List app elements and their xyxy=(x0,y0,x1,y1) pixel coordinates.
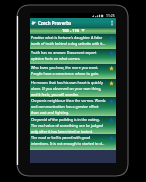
button[interactable]: Who loves you how, the more you want. Pe… xyxy=(30,64,116,79)
button[interactable]: 100 - 110 xyxy=(30,27,116,34)
button[interactable]: He means that has his own heart is quick… xyxy=(30,79,116,97)
button[interactable]: Favourite xyxy=(106,35,116,42)
staticText: Who loves you how, the more you want. Pe… xyxy=(31,65,106,76)
button[interactable]: Favourite xyxy=(106,80,116,87)
button[interactable]: More options xyxy=(109,18,115,27)
button[interactable]: Favourite xyxy=(106,50,116,57)
staticText: Truth has no answer. Document expert opi… xyxy=(31,50,106,61)
button[interactable]: The road or bell is paved with good inte… xyxy=(30,134,116,150)
staticText: 11:25 xyxy=(106,13,115,18)
button[interactable]: Czech Proverbs xyxy=(30,18,116,27)
button[interactable]: Favourite xyxy=(106,98,116,105)
staticText: 100 - 110 xyxy=(62,28,80,33)
button[interactable]: Truth has no answer. Document expert opi… xyxy=(30,49,116,64)
button[interactable]: Favourite xyxy=(106,117,116,124)
button[interactable]: Practise what is fortune's daughter. A f… xyxy=(30,34,116,49)
button[interactable]: Favourite xyxy=(106,135,116,142)
button[interactable]: Favourite xyxy=(106,65,116,72)
button[interactable]: Chrysmid of the pudding is in the eating… xyxy=(30,116,116,134)
staticText: Chrysmid of the pudding is in the eating… xyxy=(31,117,106,134)
button[interactable]: Chrysmic neighbour than the sorrow. Word… xyxy=(30,97,116,116)
staticText: Practise what is fortune's daughter. A f… xyxy=(31,35,106,46)
staticText: Chrysmic neighbour than the sorrow. Word… xyxy=(31,98,106,115)
staticText: The road or bell is paved with good inte… xyxy=(31,135,106,146)
staticText: Czech Proverbs xyxy=(38,20,72,26)
staticText: He means that has his own heart is quick… xyxy=(31,80,106,97)
